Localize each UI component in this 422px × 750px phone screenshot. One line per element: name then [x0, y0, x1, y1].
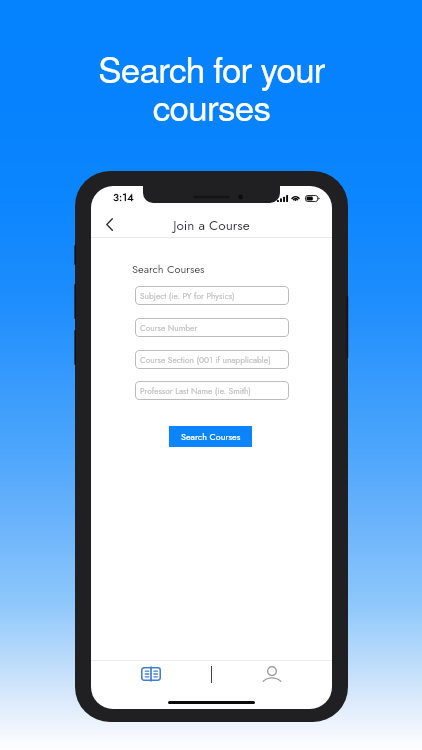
button[interactable]: Search Courses [169, 426, 252, 447]
button[interactable]: Back [96, 210, 122, 238]
staticText: Professor Last Name (ie. Smith) [140, 385, 251, 397]
staticText: Search Courses [181, 430, 241, 443]
button[interactable]: Course Section (001 if unapplicable) [135, 350, 289, 369]
button[interactable]: Subject (ie. PY for Physics) [135, 286, 289, 305]
button[interactable]: Course Number [135, 318, 289, 337]
staticText: Search for your courses [98, 43, 325, 131]
button[interactable]: Courses [131, 662, 171, 686]
button[interactable]: Scan [191, 662, 232, 686]
staticText: Course Section (001 if unapplicable) [140, 354, 271, 366]
staticText: 3:14 [113, 189, 134, 205]
staticText: Join a Course [91, 216, 332, 236]
button[interactable]: Professor Last Name (ie. Smith) [135, 381, 289, 400]
staticText: Course Number [140, 322, 198, 334]
staticText: Subject (ie. PY for Physics) [140, 290, 235, 302]
button[interactable]: Profile [252, 658, 292, 698]
staticText: Search Courses [132, 261, 205, 277]
